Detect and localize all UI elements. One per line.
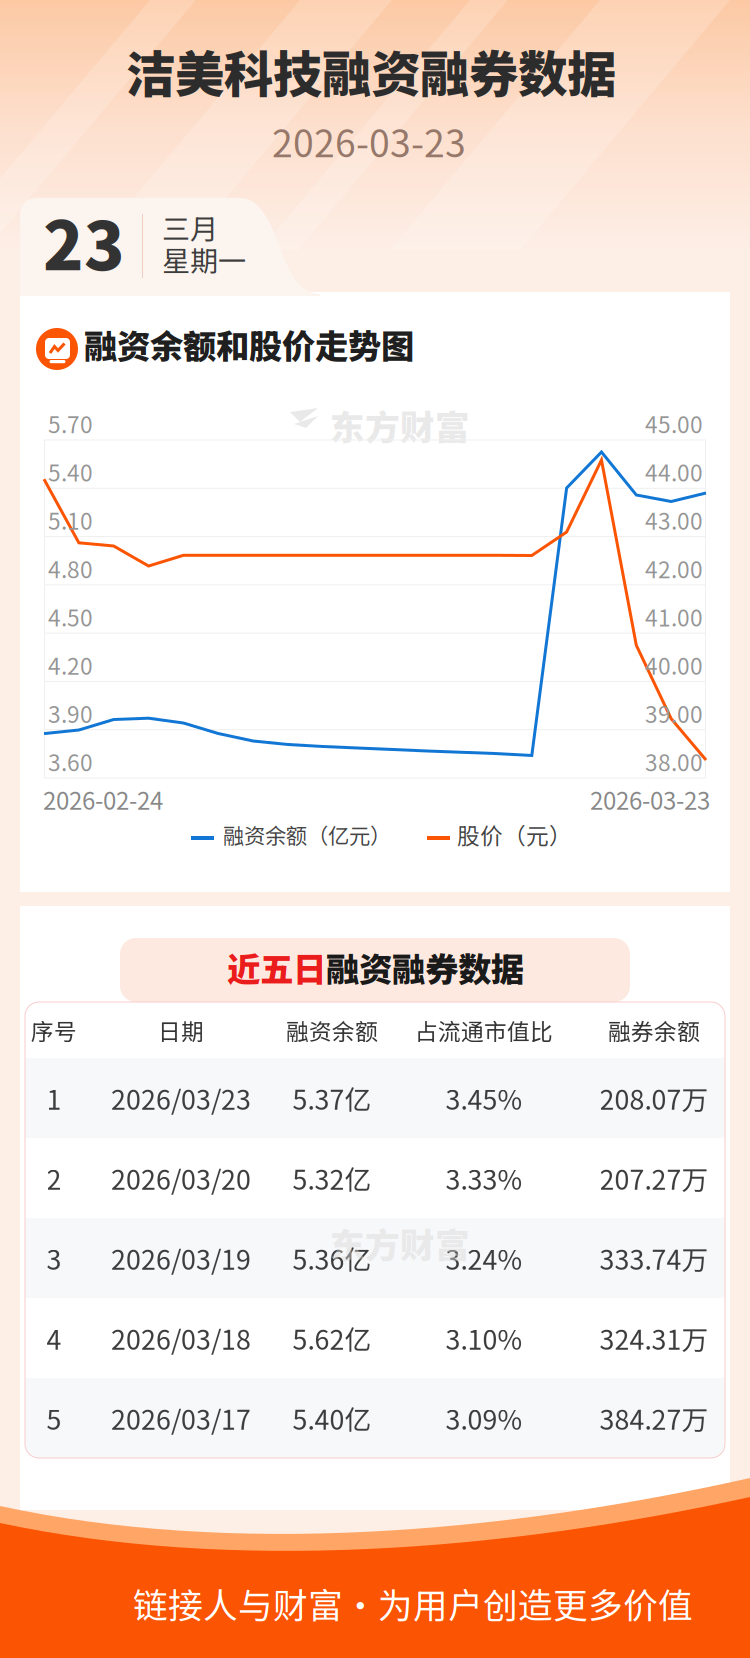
- staticText: 384.27万: [599, 1399, 708, 1437]
- staticText: 2026-03-23: [590, 782, 710, 817]
- staticText: 208.07万: [599, 1079, 708, 1117]
- staticText: 38.00: [645, 745, 703, 778]
- staticText: 3.24%: [445, 1239, 522, 1277]
- staticText: 5.36亿: [292, 1239, 371, 1277]
- staticText: 融资余额: [286, 1014, 378, 1046]
- staticText: 占流通市值比: [415, 1014, 553, 1046]
- staticText: 4.80: [48, 552, 93, 585]
- staticText: 5.10: [48, 504, 93, 536]
- staticText: 1: [46, 1079, 61, 1117]
- staticText: 2026/03/23: [111, 1079, 251, 1117]
- staticText: 5: [46, 1399, 61, 1437]
- staticText: 3.10%: [445, 1319, 522, 1357]
- staticText: 39.00: [645, 697, 703, 729]
- staticText: 3: [46, 1239, 61, 1277]
- staticText: 5.40: [48, 455, 93, 488]
- staticText: 3.09%: [445, 1399, 522, 1437]
- staticText: 23: [43, 193, 125, 289]
- staticText: 序号: [31, 1014, 77, 1046]
- staticText: 44.00: [645, 455, 703, 488]
- staticText: 星期一: [162, 239, 246, 279]
- staticText: 三月: [162, 207, 218, 247]
- staticText: 3.90: [48, 697, 93, 729]
- staticText: 5.32亿: [292, 1159, 371, 1197]
- staticText: 324.31万: [599, 1319, 708, 1357]
- staticText: 43.00: [645, 504, 703, 536]
- staticText: 2026/03/20: [111, 1159, 251, 1197]
- staticText: 股价（元）: [457, 818, 572, 851]
- staticText: 5.70: [48, 407, 93, 440]
- staticText: 4.50: [48, 600, 93, 633]
- staticText: 5.37亿: [292, 1079, 371, 1117]
- staticText: 4: [46, 1319, 61, 1357]
- staticText: 2026-03-23: [272, 114, 466, 168]
- staticText: 3.45%: [445, 1079, 522, 1117]
- staticText: 近五日: [227, 943, 326, 991]
- staticText: 链接人与财富·为用户创造更多价值: [133, 1578, 693, 1628]
- staticText: 40.00: [645, 648, 703, 681]
- staticText: 2026-02-24: [43, 782, 163, 817]
- staticText: 2: [46, 1159, 61, 1197]
- staticText: 4.20: [48, 648, 93, 681]
- staticText: 日期: [158, 1014, 204, 1046]
- staticText: 5.62亿: [292, 1319, 371, 1357]
- staticText: 207.27万: [599, 1159, 708, 1197]
- staticText: 融资余额（亿元）: [223, 819, 391, 850]
- staticText: 45.00: [645, 407, 703, 440]
- staticText: 42.00: [645, 552, 703, 585]
- staticText: 融资融券数据: [326, 943, 524, 991]
- staticText: 东方财富: [330, 1218, 470, 1268]
- staticText: 融券余额: [608, 1014, 700, 1046]
- staticText: 333.74万: [599, 1239, 708, 1277]
- staticText: 3.60: [48, 745, 93, 778]
- staticText: 3.33%: [445, 1159, 522, 1197]
- staticText: 融资余额和股价走势图: [84, 320, 414, 368]
- staticText: 2026/03/18: [111, 1319, 251, 1357]
- staticText: 东方财富: [330, 400, 470, 450]
- staticText: 5.40亿: [292, 1399, 371, 1437]
- staticText: 2026/03/17: [111, 1399, 251, 1437]
- staticText: 2026/03/19: [111, 1239, 251, 1277]
- staticText: 41.00: [645, 600, 703, 633]
- staticText: 洁美科技融资融券数据: [126, 35, 616, 106]
